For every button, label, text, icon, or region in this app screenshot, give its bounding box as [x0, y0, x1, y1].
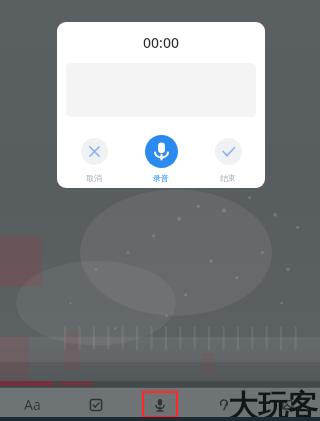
- staticText: 录音: [153, 173, 169, 183]
- button[interactable]: Cancel: [64, 135, 124, 183]
- staticText: Aa: [24, 395, 41, 414]
- button[interactable]: Insert image: [256, 388, 320, 421]
- button[interactable]: Attach: [192, 388, 256, 421]
- staticText: 大玩客: [228, 387, 318, 420]
- button[interactable]: Voice input: [128, 388, 192, 421]
- staticText: 取消: [86, 173, 102, 183]
- button[interactable]: Record: [131, 135, 191, 183]
- button[interactable]: Aa: [0, 388, 64, 421]
- button[interactable]: Checklist: [64, 388, 128, 421]
- button[interactable]: Finish: [198, 135, 258, 183]
- staticText: 00:00: [57, 33, 265, 52]
- staticText: 结束: [220, 173, 236, 183]
